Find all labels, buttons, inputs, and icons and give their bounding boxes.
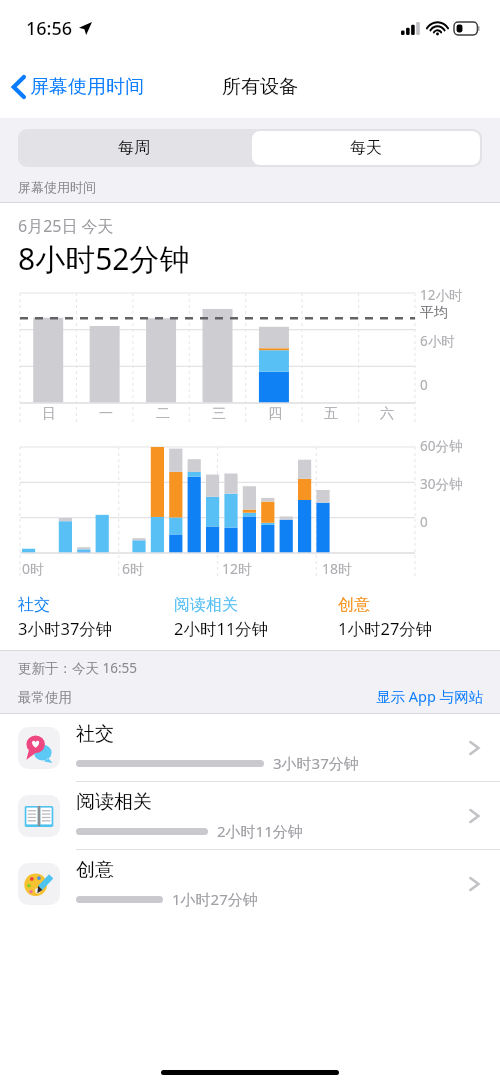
button[interactable]: 创意 xyxy=(0,850,500,917)
staticText: 六 xyxy=(380,405,394,423)
other: 详情 xyxy=(464,874,484,894)
staticText: 创意 xyxy=(76,858,114,882)
staticText: 阅读相关 xyxy=(76,790,152,814)
staticText: 每天 xyxy=(350,138,382,158)
staticText: 二 xyxy=(156,405,170,423)
staticText: 12时 xyxy=(222,559,253,578)
staticText: 2小时11分钟 xyxy=(217,821,303,841)
staticText: 三 xyxy=(212,405,226,423)
staticText: 1小时27分钟 xyxy=(338,617,433,640)
staticText: 平均 xyxy=(420,304,448,322)
staticText: 12小时 xyxy=(420,286,463,304)
staticText: 2小时11分钟 xyxy=(174,617,269,640)
staticText: 社交 xyxy=(18,595,50,615)
button[interactable]: 每周 xyxy=(18,129,250,167)
staticText: 最常使用 xyxy=(18,689,72,706)
staticText: 8小时52分钟 xyxy=(18,238,190,279)
button[interactable]: 社交 xyxy=(18,595,174,640)
button[interactable]: 屏幕使用时间 xyxy=(12,75,144,99)
staticText: 6月25日 今天 xyxy=(18,215,114,237)
staticText: 0 xyxy=(420,513,428,531)
staticText: 创意 xyxy=(338,595,370,615)
staticText: 四 xyxy=(268,405,282,423)
staticText: 日 xyxy=(42,405,56,423)
button[interactable]: 每天 xyxy=(252,131,480,165)
staticText: 3小时37分钟 xyxy=(18,617,113,640)
staticText: 社交 xyxy=(76,722,114,746)
staticText: 30分钟 xyxy=(420,475,463,493)
staticText: 3小时37分钟 xyxy=(273,753,359,773)
staticText: 显示 App 与网站 xyxy=(376,686,484,706)
staticText: 五 xyxy=(324,405,338,423)
staticText: 6小时 xyxy=(420,332,455,350)
staticText: 一 xyxy=(99,405,113,423)
staticText: 每周 xyxy=(118,138,150,158)
button[interactable]: 阅读相关 xyxy=(174,595,338,640)
staticText: 所有设备 xyxy=(222,75,298,99)
button[interactable]: 显示 App 与网站 xyxy=(376,686,484,706)
staticText: 16:56 xyxy=(26,16,73,41)
staticText: 屏幕使用时间 xyxy=(30,75,144,99)
other: 详情 xyxy=(464,738,484,758)
staticText: 18时 xyxy=(322,559,353,578)
staticText: 更新于：今天 16:55 xyxy=(18,659,138,677)
button[interactable]: 阅读相关 xyxy=(0,782,500,849)
staticText: 60分钟 xyxy=(420,437,463,455)
staticText: 0 xyxy=(420,376,428,394)
staticText: 阅读相关 xyxy=(174,595,238,615)
staticText: 0时 xyxy=(22,559,45,578)
staticText: 6时 xyxy=(122,559,145,578)
button[interactable]: 创意 xyxy=(338,595,486,640)
button[interactable]: 社交 xyxy=(0,714,500,781)
staticText: 1小时27分钟 xyxy=(172,889,258,909)
staticText: 屏幕使用时间 xyxy=(18,179,96,195)
other: 详情 xyxy=(464,806,484,826)
